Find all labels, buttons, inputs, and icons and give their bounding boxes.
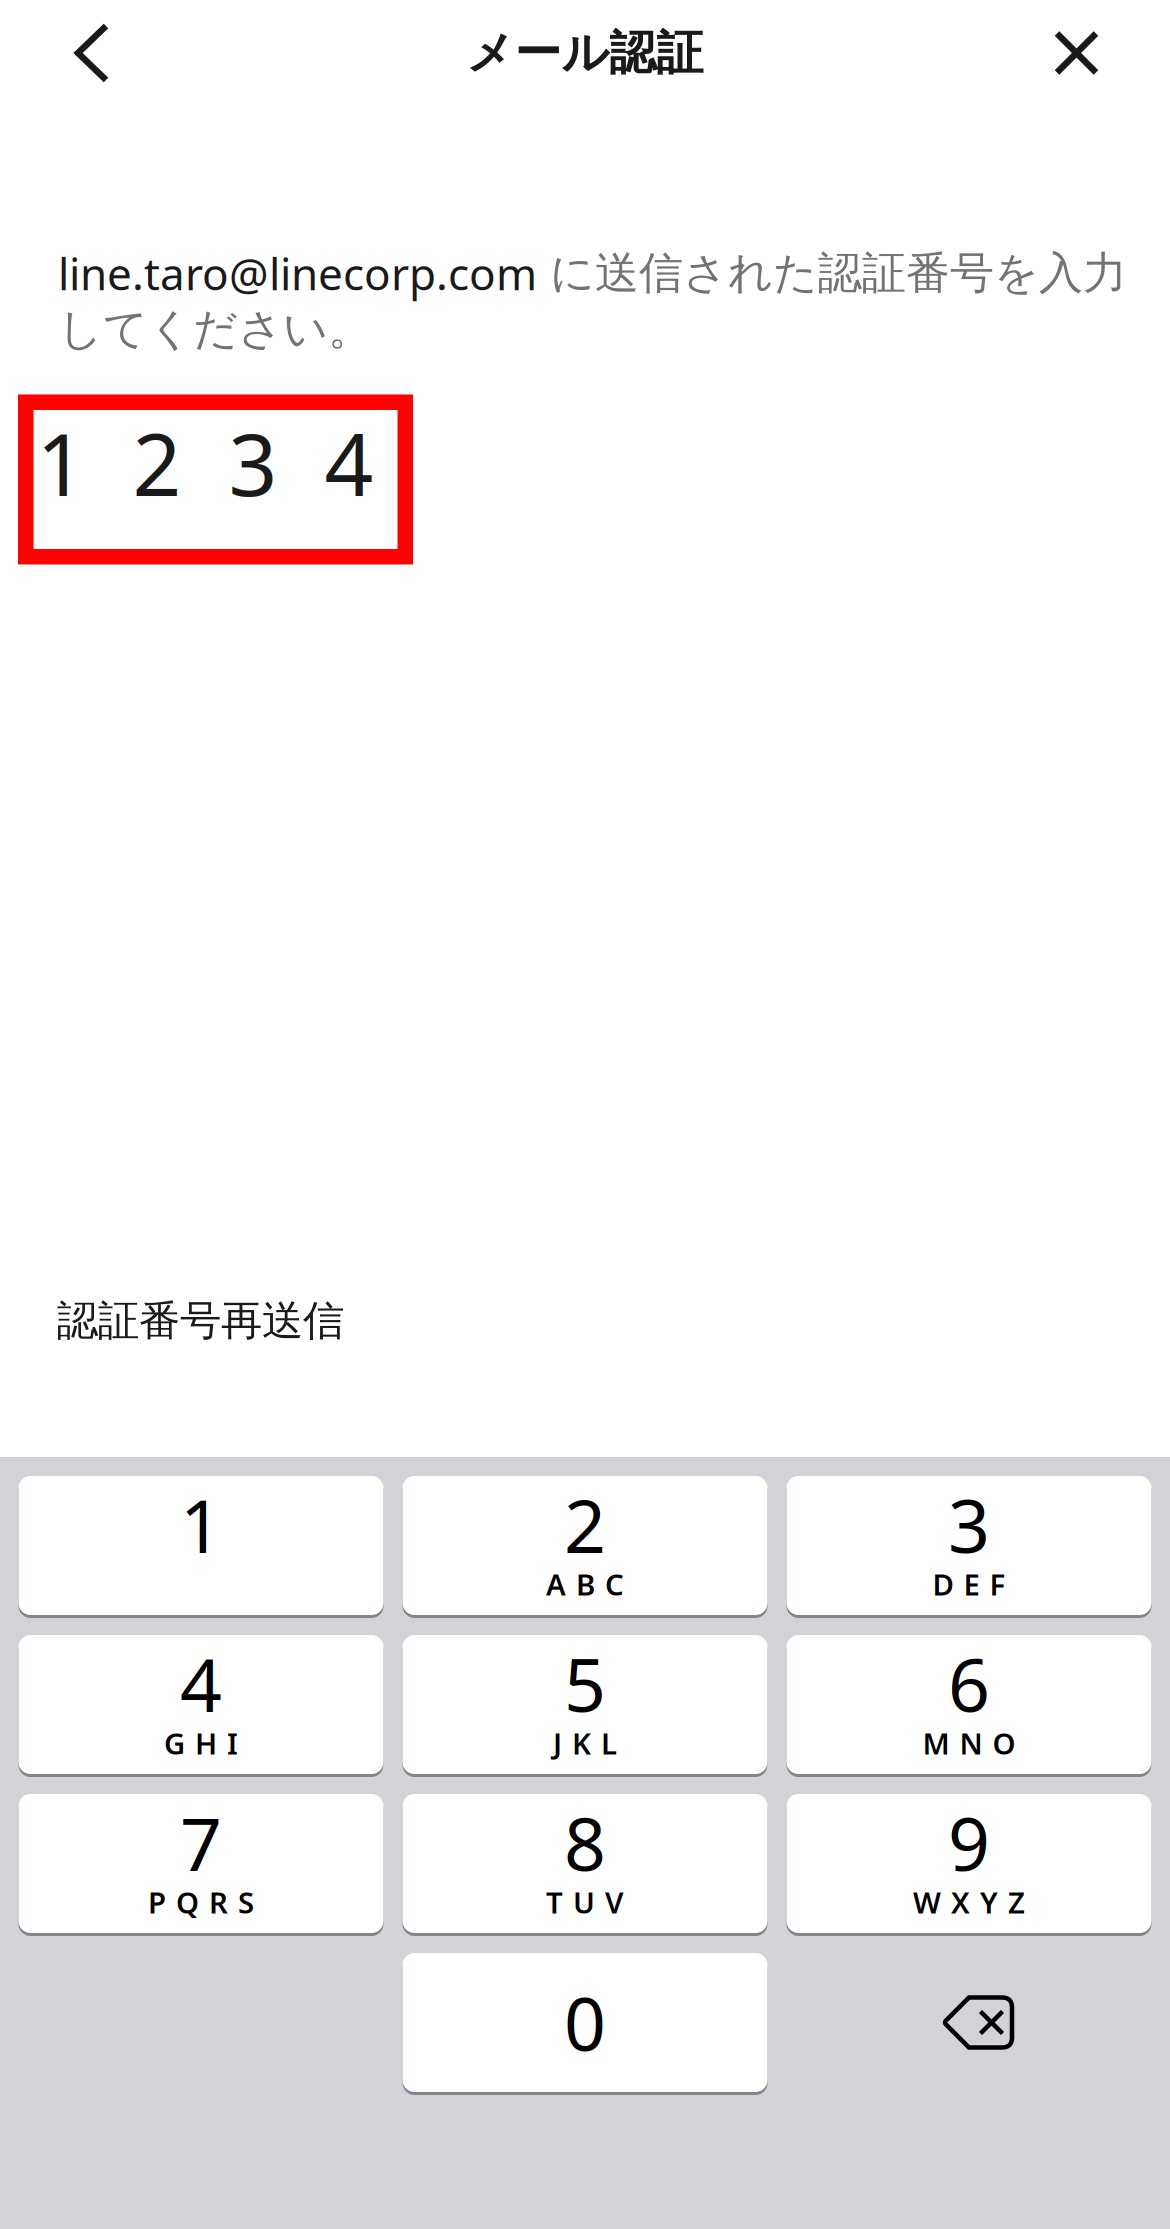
button[interactable]: 6 <box>786 1635 1151 1774</box>
button[interactable]: Close <box>1017 1 1170 104</box>
button[interactable]: Delete <box>786 1953 1151 2092</box>
staticText: 9 <box>948 1794 990 1891</box>
button[interactable]: 8 <box>402 1794 767 1933</box>
button[interactable]: 2 <box>402 1476 767 1615</box>
staticText: 8 <box>564 1794 606 1891</box>
button[interactable]: 認証番号再送信 <box>0 1281 368 1360</box>
staticText: DEF <box>932 1564 1005 1603</box>
staticText: WXYZ <box>913 1882 1025 1921</box>
button[interactable]: 3 <box>786 1476 1151 1615</box>
staticText: 5 <box>564 1635 606 1732</box>
staticText: 7 <box>180 1794 222 1891</box>
staticText: してください。 <box>58 302 372 356</box>
staticText: メール認証 <box>466 24 703 82</box>
staticText: ABC <box>546 1564 624 1603</box>
button[interactable]: 7 <box>18 1794 383 1933</box>
button[interactable]: 9 <box>786 1794 1151 1933</box>
staticText: GHI <box>164 1723 238 1762</box>
staticText: MNO <box>922 1723 1015 1762</box>
staticText: line.taro@linecorp.com <box>58 244 537 302</box>
button[interactable]: 4 <box>18 1635 383 1774</box>
button[interactable]: 0 <box>402 1953 767 2092</box>
button[interactable]: 1 <box>18 1476 383 1615</box>
staticText: 1 <box>180 1476 222 1573</box>
staticText: PQRS <box>148 1882 254 1921</box>
staticText: に送信された認証番号を入力 <box>537 246 1127 300</box>
staticText: TUV <box>546 1882 624 1921</box>
button[interactable]: 5 <box>402 1635 767 1774</box>
staticText: 4 <box>180 1635 222 1732</box>
staticText: 1 2 3 4 <box>36 406 373 520</box>
staticText: JKL <box>553 1723 617 1762</box>
staticText: 3 <box>948 1476 990 1573</box>
button[interactable]: Back <box>0 2 146 104</box>
staticText: 2 <box>564 1476 606 1573</box>
staticText: 6 <box>948 1635 990 1732</box>
staticText: 認証番号再送信 <box>57 1295 344 1346</box>
staticText: 0 <box>564 1974 606 2071</box>
